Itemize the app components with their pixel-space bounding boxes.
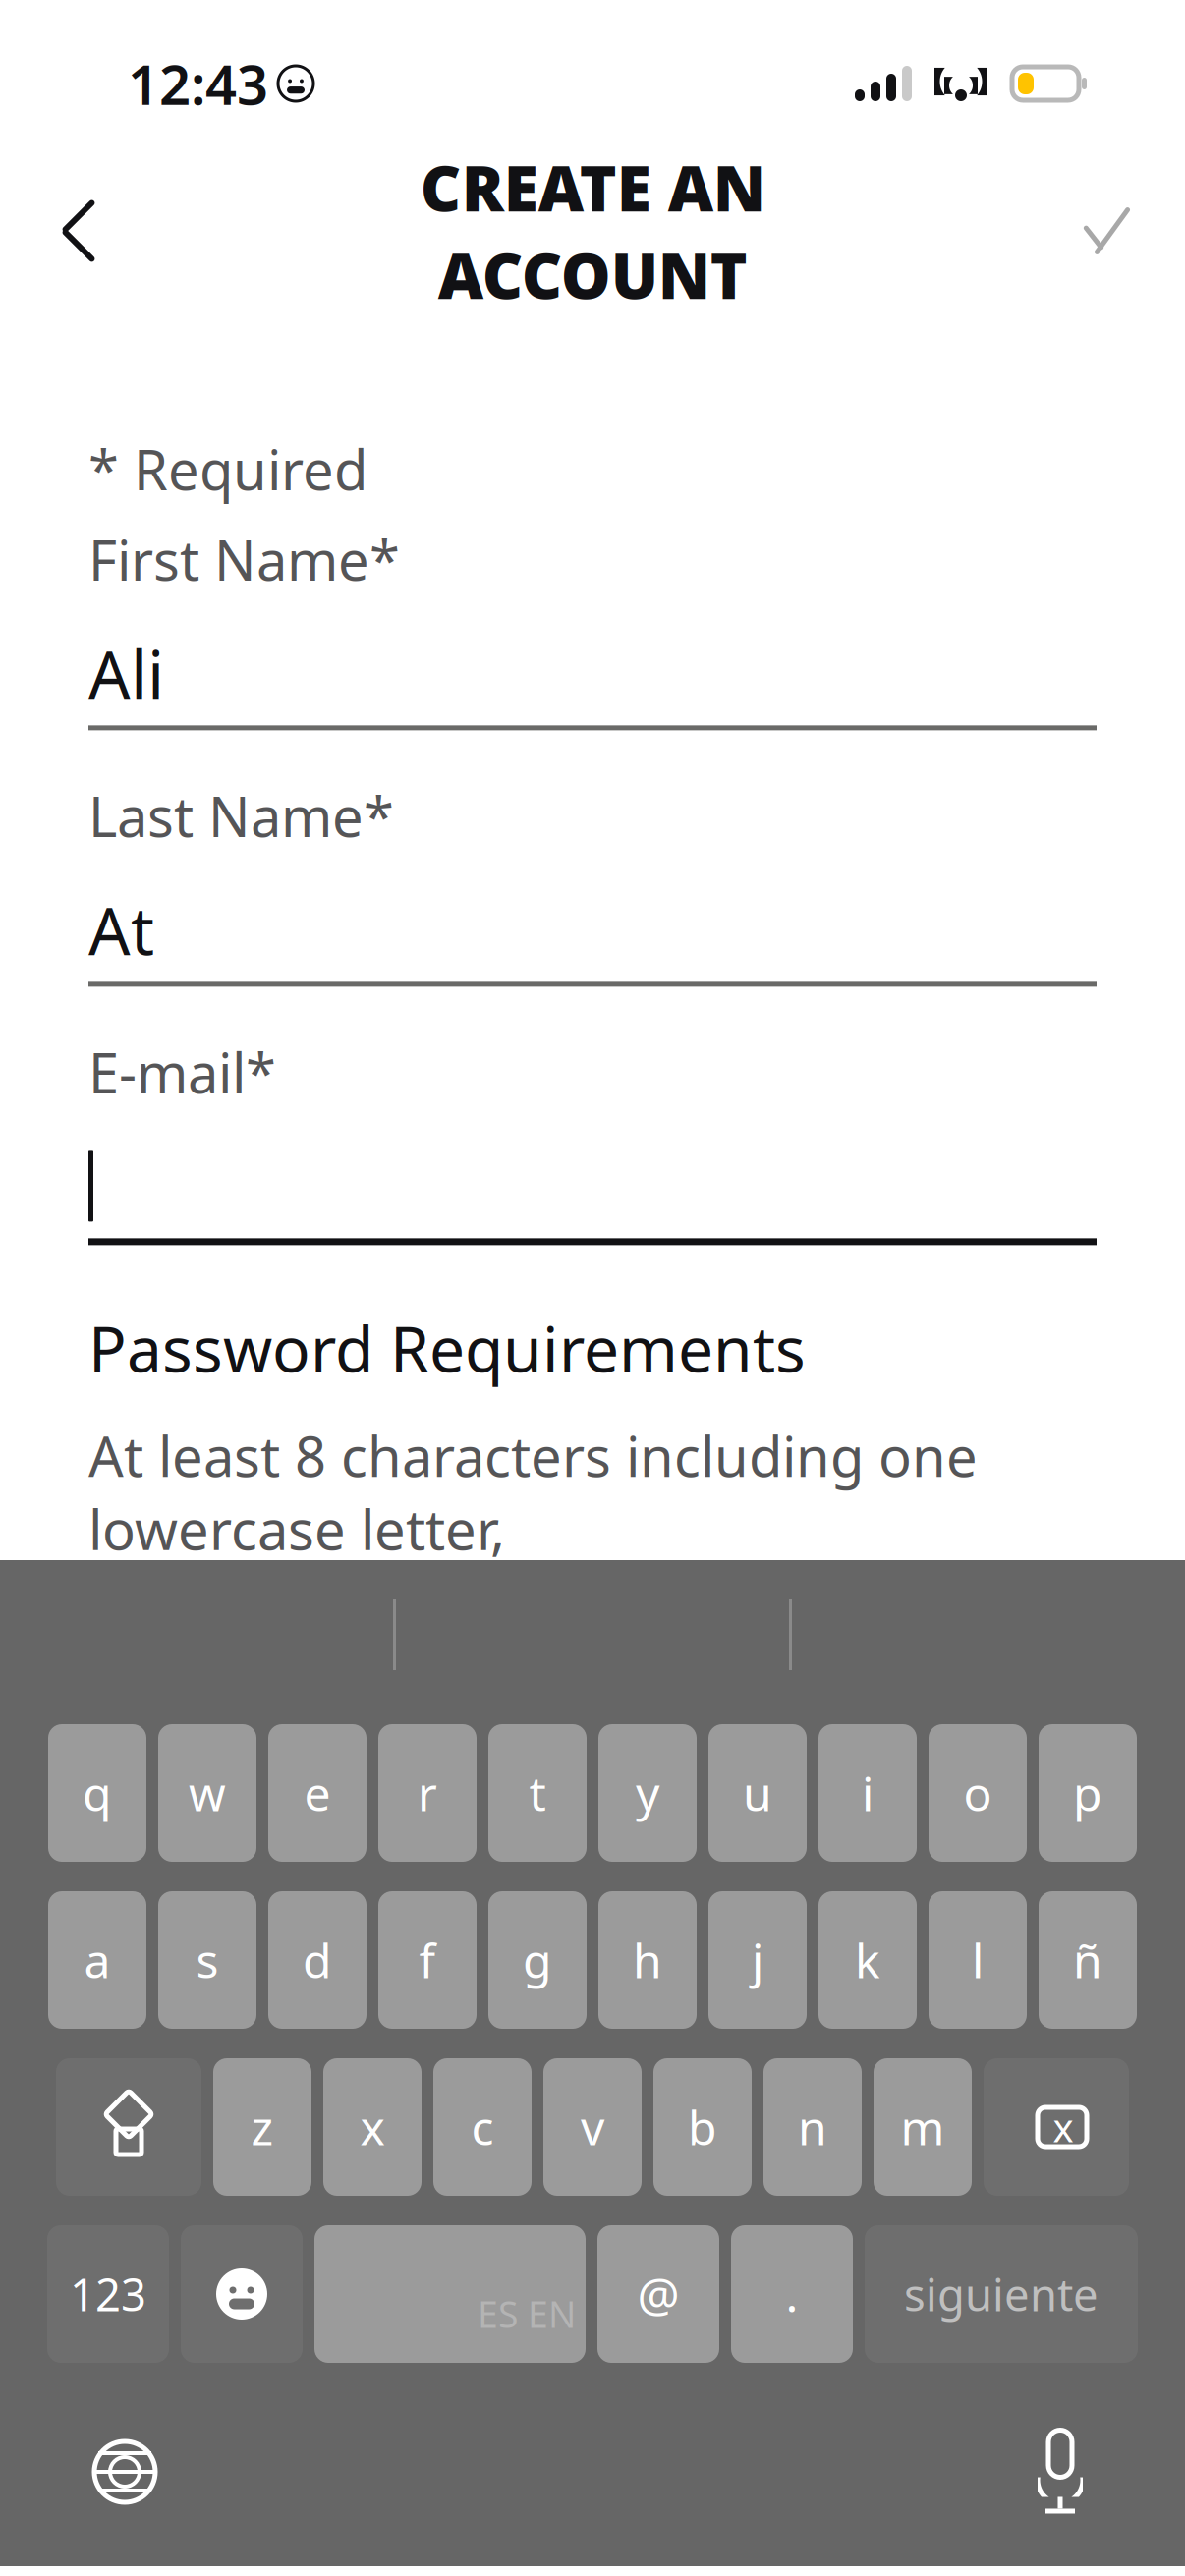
- button[interactable]: z: [213, 2058, 311, 2196]
- staticText: f: [419, 1929, 436, 1991]
- staticText: g: [523, 1929, 552, 1991]
- staticText: ES EN: [478, 2289, 576, 2338]
- button[interactable]: .: [731, 2225, 853, 2363]
- button[interactable]: k: [818, 1891, 917, 2029]
- staticText: h: [633, 1929, 662, 1991]
- button[interactable]: r: [378, 1724, 477, 1862]
- staticText: w: [189, 1762, 226, 1824]
- button[interactable]: Shift: [56, 2058, 201, 2196]
- staticText: a: [84, 1929, 111, 1991]
- button[interactable]: h: [598, 1891, 697, 2029]
- button[interactable]: Save account: [1052, 177, 1160, 285]
- button[interactable]: Space: [314, 2225, 586, 2363]
- staticText: s: [196, 1929, 219, 1991]
- button[interactable]: q: [48, 1724, 146, 1862]
- staticText: Ali: [88, 630, 164, 717]
- button[interactable]: p: [1039, 1724, 1137, 1862]
- staticText: d: [303, 1929, 332, 1991]
- button[interactable]: i: [818, 1724, 917, 1862]
- button[interactable]: v: [543, 2058, 642, 2196]
- button[interactable]: t: [488, 1724, 587, 1862]
- button[interactable]: E-mail*: [88, 1044, 1097, 1245]
- staticText: Last Name*: [88, 779, 394, 852]
- staticText: At least 8 characters including one lowe…: [88, 1419, 978, 1565]
- button[interactable]: d: [268, 1891, 367, 2029]
- staticText: 12:43: [128, 47, 268, 120]
- button[interactable]: m: [874, 2058, 972, 2196]
- button[interactable]: @: [597, 2225, 719, 2363]
- staticText: l: [972, 1929, 984, 1991]
- button[interactable]: j: [708, 1891, 807, 2029]
- staticText: r: [418, 1762, 437, 1824]
- button[interactable]: l: [929, 1891, 1027, 2029]
- staticText: c: [471, 2096, 494, 2158]
- staticText: m: [901, 2096, 945, 2158]
- staticText: At: [88, 886, 154, 973]
- staticText: .: [786, 2263, 798, 2325]
- button[interactable]: siguiente: [865, 2225, 1138, 2363]
- button[interactable]: Dictate: [1006, 2418, 1114, 2526]
- staticText: x: [360, 2096, 385, 2158]
- button[interactable]: Emoji: [181, 2225, 303, 2363]
- staticText: @: [637, 2263, 679, 2325]
- staticText: siguiente: [904, 2264, 1099, 2324]
- staticText: 123: [70, 2264, 146, 2324]
- staticText: t: [529, 1762, 546, 1824]
- button[interactable]: ñ: [1039, 1891, 1137, 2029]
- staticText: x: [1053, 2101, 1073, 2153]
- button[interactable]: x: [323, 2058, 422, 2196]
- button[interactable]: b: [653, 2058, 752, 2196]
- button[interactable]: u: [708, 1724, 807, 1862]
- button[interactable]: n: [763, 2058, 862, 2196]
- staticText: ñ: [1073, 1929, 1102, 1991]
- staticText: * Required: [88, 432, 367, 505]
- staticText: e: [304, 1762, 331, 1824]
- button[interactable]: c: [433, 2058, 532, 2196]
- staticText: i: [862, 1762, 874, 1824]
- staticText: Password Requirements: [88, 1306, 806, 1390]
- button[interactable]: g: [488, 1891, 587, 2029]
- button[interactable]: First Name*: [88, 531, 1097, 730]
- staticText: CREATE AN ACCOUNT: [420, 145, 765, 316]
- staticText: u: [743, 1762, 772, 1824]
- staticText: z: [251, 2096, 274, 2158]
- staticText: q: [83, 1762, 112, 1824]
- button[interactable]: Last Name*: [88, 787, 1097, 987]
- staticText: y: [636, 1762, 659, 1824]
- staticText: o: [963, 1762, 992, 1824]
- button[interactable]: o: [929, 1724, 1027, 1862]
- button[interactable]: Back: [25, 177, 133, 285]
- staticText: p: [1073, 1762, 1102, 1824]
- button[interactable]: s: [158, 1891, 256, 2029]
- staticText: v: [581, 2096, 604, 2158]
- button[interactable]: Next keyboard: [71, 2418, 179, 2526]
- staticText: E-mail*: [88, 1036, 276, 1109]
- button[interactable]: w: [158, 1724, 256, 1862]
- staticText: b: [688, 2096, 717, 2158]
- button[interactable]: f: [378, 1891, 477, 2029]
- button[interactable]: a: [48, 1891, 146, 2029]
- button[interactable]: 123: [47, 2225, 169, 2363]
- button[interactable]: e: [268, 1724, 367, 1862]
- staticText: j: [752, 1929, 763, 1991]
- staticText: k: [855, 1929, 880, 1991]
- staticText: n: [798, 2096, 827, 2158]
- staticText: First Name*: [88, 523, 400, 596]
- button[interactable]: y: [598, 1724, 697, 1862]
- button[interactable]: Delete: [984, 2058, 1129, 2196]
